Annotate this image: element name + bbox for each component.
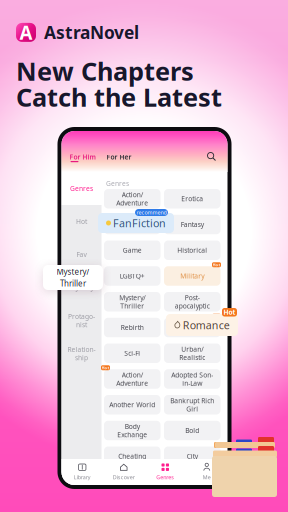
staticText: Game (123, 246, 142, 255)
staticText: Discover (113, 474, 135, 481)
button[interactable]: Library (61, 459, 103, 485)
staticText: Fanfiction (117, 220, 147, 229)
button[interactable]: Fantasy (164, 215, 220, 234)
staticText: Mystery/ (56, 266, 89, 277)
staticText: Cheating (118, 452, 146, 461)
staticText: Catch the Latest (16, 80, 222, 114)
button[interactable]: Cheating (104, 446, 160, 466)
staticText: ship (75, 353, 88, 362)
button[interactable]: Another World (104, 395, 160, 414)
staticText: FanFiction (113, 216, 166, 230)
button[interactable]: Me (186, 459, 227, 485)
staticText: Relation- (67, 345, 95, 354)
button[interactable]: Sci-Fi (104, 343, 160, 363)
staticText: Romance (183, 318, 230, 332)
staticText: Hot (76, 217, 87, 226)
staticText: Post- (185, 293, 200, 302)
staticText: in-Law (182, 379, 202, 388)
staticText: AstraNovel (44, 21, 139, 44)
button[interactable]: Bold (164, 421, 220, 440)
button[interactable]: Relation- (61, 337, 101, 370)
staticText: Romance (178, 323, 207, 332)
staticText: Fav (76, 250, 86, 259)
button[interactable]: Fanfiction (104, 215, 160, 234)
staticText: Historical (177, 246, 207, 255)
staticText: Protago- (68, 312, 95, 321)
staticText: Thriller (120, 301, 144, 310)
staticText: Rebirth (121, 323, 144, 332)
button[interactable]: Action/ (104, 189, 160, 208)
staticText: For Her (106, 153, 131, 161)
button[interactable]: Erotica (164, 189, 220, 208)
staticText: A (19, 20, 32, 45)
staticText: Hot (223, 308, 235, 317)
staticText: Exchange (117, 430, 147, 439)
button[interactable]: Romance (166, 314, 238, 336)
button[interactable]: Discover (103, 459, 144, 485)
staticText: Hot (101, 365, 109, 370)
button[interactable]: Body (104, 421, 160, 440)
staticText: Genres (70, 184, 93, 193)
button[interactable]: LGBTQ+ (104, 266, 160, 286)
button[interactable]: Romance (164, 318, 220, 337)
button[interactable]: Genres (144, 459, 186, 485)
staticText: Library (74, 474, 91, 481)
staticText: New Chapters (16, 54, 194, 88)
button[interactable]: Mystery/ (104, 292, 160, 311)
button[interactable]: Search (207, 152, 216, 161)
button[interactable]: Action/ (104, 369, 160, 389)
staticText: For Him (69, 153, 95, 161)
staticText: Mystery (69, 283, 93, 292)
button[interactable]: For Her (106, 153, 131, 161)
staticText: nist (76, 320, 87, 329)
staticText: Sci-Fi (124, 349, 140, 358)
button[interactable]: Hot (61, 205, 101, 238)
button[interactable]: Game (104, 240, 160, 260)
staticText: Genres (106, 179, 129, 188)
staticText: Me (203, 474, 211, 481)
button[interactable]: Mystery/ (43, 265, 103, 290)
staticText: City (187, 452, 198, 461)
staticText: Bankrupt Rich (170, 396, 214, 405)
staticText: Adventure (116, 198, 148, 207)
button[interactable]: Fav (61, 238, 101, 271)
staticText: LGBTQ+ (120, 272, 145, 280)
button[interactable]: Protago- (61, 304, 101, 337)
button[interactable]: Post- (164, 292, 220, 311)
staticText: Adopted Son- (171, 370, 213, 379)
button[interactable]: Mystery (61, 271, 101, 304)
staticText: Action/ (122, 190, 143, 199)
staticText: apocalyptic (175, 301, 210, 310)
button[interactable]: Bankrupt Rich (164, 395, 220, 414)
button[interactable]: Military (164, 266, 220, 286)
staticText: Bold (185, 426, 199, 435)
staticText: Fantasy (181, 220, 204, 229)
staticText: Another World (109, 400, 155, 409)
staticText: Mystery/ (119, 293, 145, 302)
staticText: Erotica (181, 194, 203, 203)
staticText: Realistic (179, 353, 205, 362)
staticText: Girl (186, 404, 198, 413)
staticText: Military (180, 272, 204, 280)
staticText: Action/ (122, 370, 143, 379)
button[interactable]: Historical (164, 240, 220, 260)
staticText: Adventure (116, 379, 148, 388)
staticText: Body (125, 422, 140, 431)
staticText: recommend (136, 209, 166, 216)
staticText: Urban/ (181, 345, 203, 353)
staticText: Genres (156, 474, 174, 481)
button[interactable]: For Him (69, 153, 95, 161)
button[interactable]: FanFiction (98, 213, 174, 233)
staticText: Thriller (60, 278, 86, 289)
button[interactable]: Adopted Son- (164, 369, 220, 389)
button[interactable]: Genres (61, 172, 101, 205)
button[interactable]: Rebirth (104, 318, 160, 337)
staticText: Hot (212, 262, 220, 267)
button[interactable]: City (164, 446, 220, 466)
button[interactable]: Urban/ (164, 343, 220, 363)
button[interactable]: A (16, 20, 139, 45)
